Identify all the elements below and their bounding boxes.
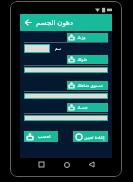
staticText: وزنك <box>77 35 86 40</box>
staticText: دهون الجسم <box>36 18 73 28</box>
button[interactable]: Back <box>85 158 98 171</box>
button[interactable] <box>24 93 108 99</box>
button[interactable] <box>24 44 50 53</box>
button[interactable]: وزنك <box>67 33 108 42</box>
button[interactable]: Back <box>23 17 34 28</box>
button[interactable] <box>24 67 108 73</box>
button[interactable]: طولك <box>67 55 108 64</box>
button[interactable]: Recents <box>35 158 48 171</box>
button[interactable] <box>24 115 108 121</box>
staticText: مستوى نشاطك <box>77 83 103 88</box>
button[interactable]: احسب <box>24 131 58 142</box>
button[interactable]: Home <box>60 158 73 171</box>
staticText: احسب <box>38 134 51 139</box>
button[interactable]: إعادة تعيين <box>73 131 108 142</box>
staticText: إعادة تعيين <box>84 134 105 140</box>
button[interactable]: مستوى نشاطك <box>67 81 108 90</box>
staticText: جنسك <box>77 105 88 110</box>
staticText: سم <box>55 46 62 51</box>
button[interactable]: جنسك <box>67 103 108 112</box>
staticText: طولك <box>77 57 87 62</box>
